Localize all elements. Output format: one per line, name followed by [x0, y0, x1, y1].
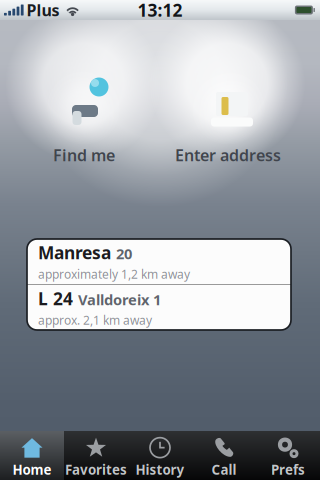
staticText: 20	[116, 244, 132, 263]
staticText: Manresa	[38, 241, 111, 264]
button[interactable]: Prefs	[256, 431, 320, 480]
staticText: Find me	[53, 144, 115, 166]
button[interactable]: Find me	[12, 64, 156, 168]
button[interactable]: Home	[0, 431, 64, 480]
button[interactable]: L 24	[27, 285, 291, 330]
button[interactable]: Manresa	[27, 239, 291, 284]
staticText: 13:12	[137, 0, 182, 21]
staticText: L 24	[38, 287, 73, 310]
staticText: History	[135, 461, 184, 478]
staticText: Prefs	[271, 461, 305, 478]
staticText: Valldoreix 1	[78, 290, 161, 309]
staticText: approximately 1,2 km away	[38, 266, 190, 282]
staticText: approx. 2,1 km away	[38, 312, 152, 328]
staticText: Plus	[27, 0, 60, 21]
staticText: Favorites	[65, 461, 127, 478]
staticText: Call	[211, 461, 236, 478]
staticText: Home	[12, 461, 51, 478]
button[interactable]: Favorites	[64, 431, 128, 480]
button[interactable]: Enter address	[156, 64, 300, 168]
button[interactable]: Call	[192, 431, 256, 480]
button[interactable]: History	[128, 431, 192, 480]
staticText: Enter address	[175, 144, 281, 166]
